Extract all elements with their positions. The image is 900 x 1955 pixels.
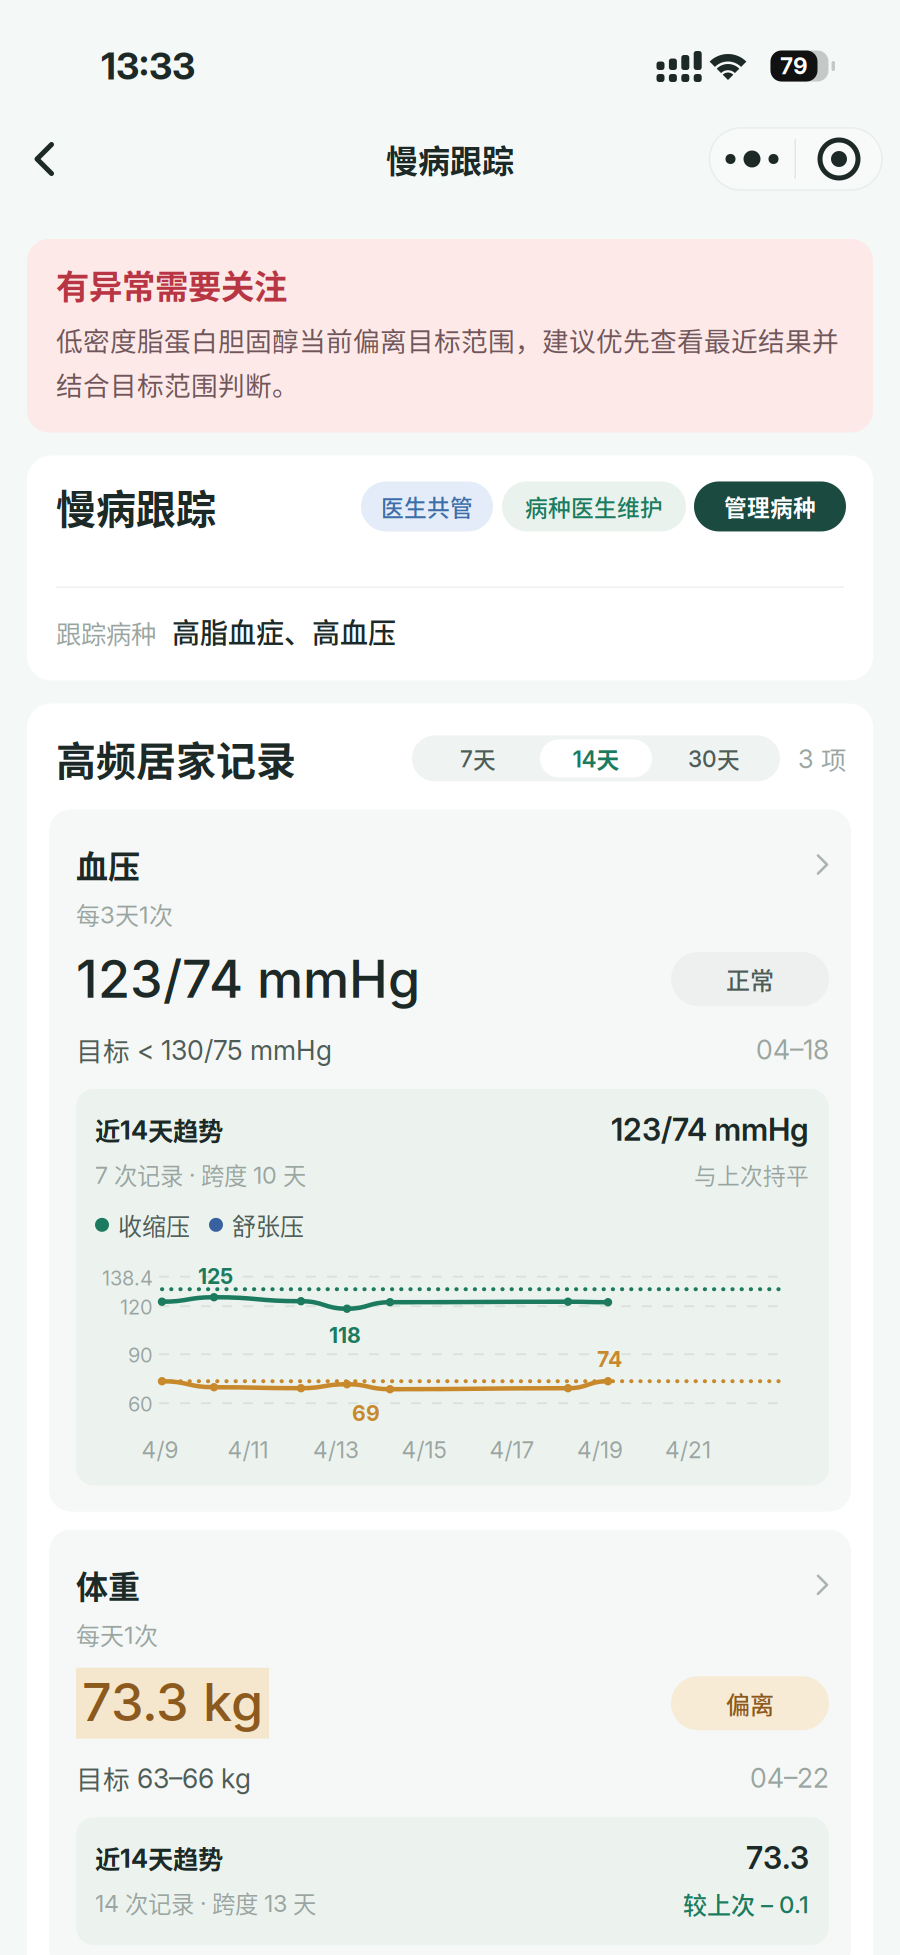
staticText: 73.3 kg bbox=[82, 1671, 263, 1734]
staticText: 13:33 bbox=[101, 43, 195, 89]
staticText: 4/15 bbox=[401, 1436, 446, 1464]
staticText: 慢病跟踪 bbox=[386, 136, 514, 182]
staticText: 4/13 bbox=[313, 1436, 359, 1464]
staticText: 3 项 bbox=[798, 740, 846, 777]
button[interactable]: 医生共管 bbox=[361, 481, 493, 531]
button[interactable]: 14天 bbox=[540, 739, 652, 777]
staticText: 04–18 bbox=[756, 1034, 829, 1066]
staticText: 73.3 bbox=[746, 1839, 809, 1876]
staticText: 90 bbox=[128, 1343, 153, 1367]
staticText: 79 bbox=[780, 52, 808, 80]
staticText: 管理病种 bbox=[724, 490, 816, 523]
staticText: 每3天1次 bbox=[76, 897, 173, 931]
staticText: 正常 bbox=[726, 961, 774, 996]
staticText: 123/74 mmHg bbox=[611, 1111, 809, 1148]
staticText: 14 次记录 · 跨度 13 天 bbox=[95, 1886, 316, 1920]
button[interactable]: 管理病种 bbox=[694, 481, 846, 531]
button[interactable]: Close bbox=[796, 128, 882, 190]
button[interactable]: 30天 bbox=[652, 739, 776, 777]
staticText: 每天1次 bbox=[76, 1617, 158, 1652]
staticText: 高脂血症、高血压 bbox=[172, 611, 396, 651]
staticText: 69 bbox=[352, 1400, 380, 1426]
staticText: 7 次记录 · 跨度 10 天 bbox=[95, 1158, 306, 1191]
staticText: 低密度脂蛋白胆固醇当前偏离目标范围，建议优先查看最近结果并结合目标范围判断。 bbox=[56, 320, 839, 403]
staticText: 目标 63–66 kg bbox=[76, 1759, 251, 1797]
button[interactable]: More bbox=[709, 128, 794, 190]
staticText: 120 bbox=[120, 1295, 153, 1319]
staticText: 14天 bbox=[572, 742, 619, 775]
staticText: 舒张压 bbox=[232, 1207, 304, 1242]
staticText: 123/74 mmHg bbox=[76, 947, 420, 1010]
staticText: 血压 bbox=[76, 841, 140, 888]
staticText: 与上次持平 bbox=[694, 1158, 809, 1191]
button[interactable]: 体重 bbox=[49, 1530, 851, 1955]
staticText: 目标 < 130/75 mmHg bbox=[76, 1030, 332, 1069]
staticText: 高频居家记录 bbox=[56, 729, 296, 787]
staticText: 74 bbox=[597, 1346, 622, 1372]
staticText: 60 bbox=[128, 1392, 153, 1416]
staticText: 跟踪病种 bbox=[56, 614, 156, 651]
staticText: 收缩压 bbox=[118, 1207, 190, 1242]
staticText: 较上次 – 0.1 bbox=[683, 1886, 809, 1921]
staticText: 04–22 bbox=[750, 1762, 829, 1794]
staticText: 医生共管 bbox=[381, 490, 473, 523]
button[interactable]: 病种医生维护 bbox=[502, 481, 686, 531]
button[interactable]: 血压 bbox=[49, 809, 851, 1512]
staticText: 有异常需要关注 bbox=[56, 260, 287, 308]
staticText: 125 bbox=[198, 1263, 233, 1289]
staticText: 病种医生维护 bbox=[525, 490, 663, 523]
staticText: 4/11 bbox=[227, 1436, 268, 1464]
staticText: 近14天趋势 bbox=[95, 1839, 223, 1876]
staticText: 7天 bbox=[460, 742, 496, 775]
staticText: 4/9 bbox=[141, 1436, 178, 1464]
staticText: 4/17 bbox=[489, 1436, 534, 1464]
staticText: 118 bbox=[329, 1322, 361, 1348]
staticText: 4/19 bbox=[577, 1436, 623, 1464]
staticText: 慢病跟踪 bbox=[56, 477, 216, 535]
staticText: 体重 bbox=[76, 1562, 140, 1608]
staticText: 138.4 bbox=[102, 1266, 153, 1290]
staticText: 4/21 bbox=[665, 1436, 711, 1464]
button[interactable]: 7天 bbox=[416, 739, 540, 777]
staticText: 偏离 bbox=[726, 1686, 774, 1721]
staticText: 30天 bbox=[688, 742, 740, 775]
staticText: 近14天趋势 bbox=[95, 1111, 223, 1148]
button[interactable]: Back bbox=[8, 124, 80, 194]
